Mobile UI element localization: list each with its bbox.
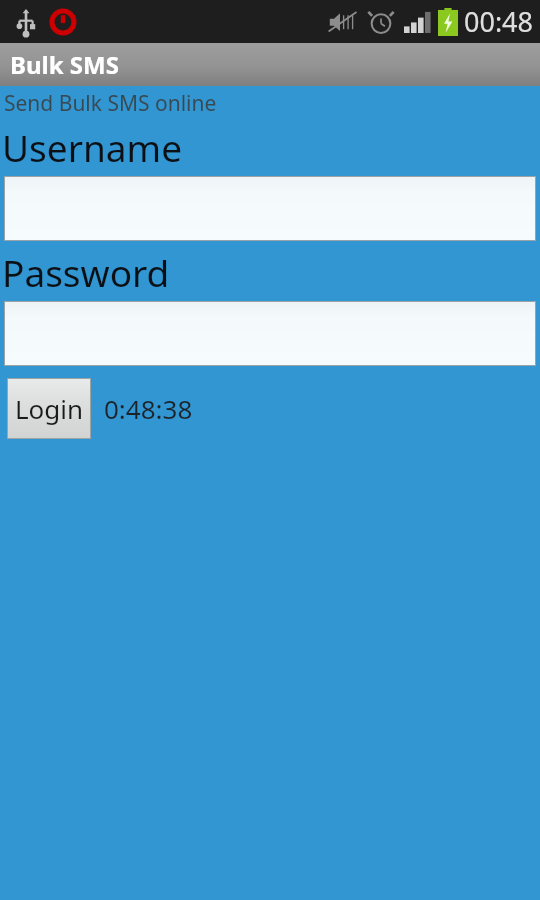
other: Signal strength	[404, 11, 432, 33]
other: Power	[52, 11, 74, 33]
other: Alarm set	[368, 9, 394, 35]
staticText: Send Bulk SMS online	[4, 89, 217, 118]
staticText: Username	[2, 122, 183, 172]
staticText: 0:48:38	[104, 391, 193, 426]
button[interactable]: Login	[8, 379, 90, 438]
staticText: Login	[15, 391, 84, 426]
staticText: 00:48	[464, 3, 534, 40]
other: Battery charging	[438, 8, 458, 36]
other: USB connected	[16, 9, 36, 35]
staticText: Password	[2, 247, 170, 297]
staticText: Bulk SMS	[10, 48, 119, 81]
other: Silent mode	[328, 10, 358, 34]
